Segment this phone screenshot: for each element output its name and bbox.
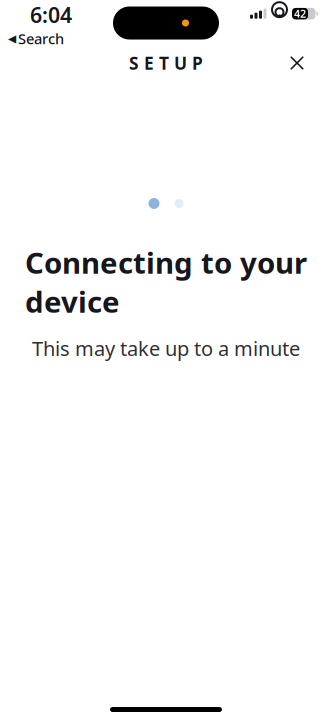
staticText: This may take up to a minute: [32, 335, 300, 361]
staticText: 6:04: [30, 1, 72, 29]
staticText: 42: [294, 7, 306, 21]
staticText: Connecting to your device: [25, 243, 307, 321]
button[interactable]: Back to Search: [8, 29, 64, 48]
staticText: S E T U P: [129, 51, 203, 74]
staticText: Search: [18, 29, 64, 48]
button[interactable]: Close setup: [277, 43, 317, 83]
staticText: ◀: [8, 33, 16, 45]
